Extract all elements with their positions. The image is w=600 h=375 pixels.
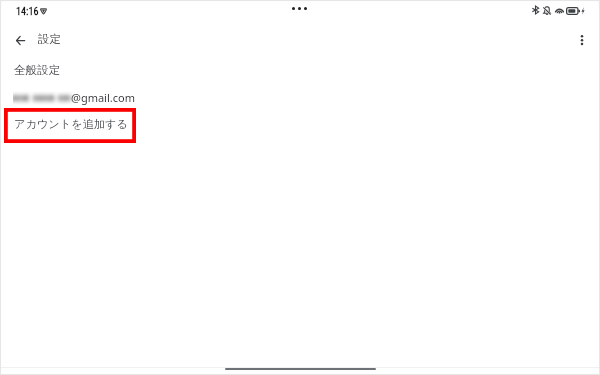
button[interactable]: アカウントを追加する — [4, 108, 136, 143]
staticText: 設定 — [38, 32, 62, 47]
button[interactable]: その他のオプション — [567, 25, 597, 55]
staticText: @gmail.com — [71, 90, 135, 105]
button[interactable]: 戻る — [5, 25, 35, 55]
staticText: アカウントを追加する — [14, 117, 128, 131]
staticText: 全般設定 — [14, 63, 61, 78]
button[interactable]: @gmail.com — [0, 86, 600, 108]
staticText: 14:16 — [16, 6, 39, 18]
